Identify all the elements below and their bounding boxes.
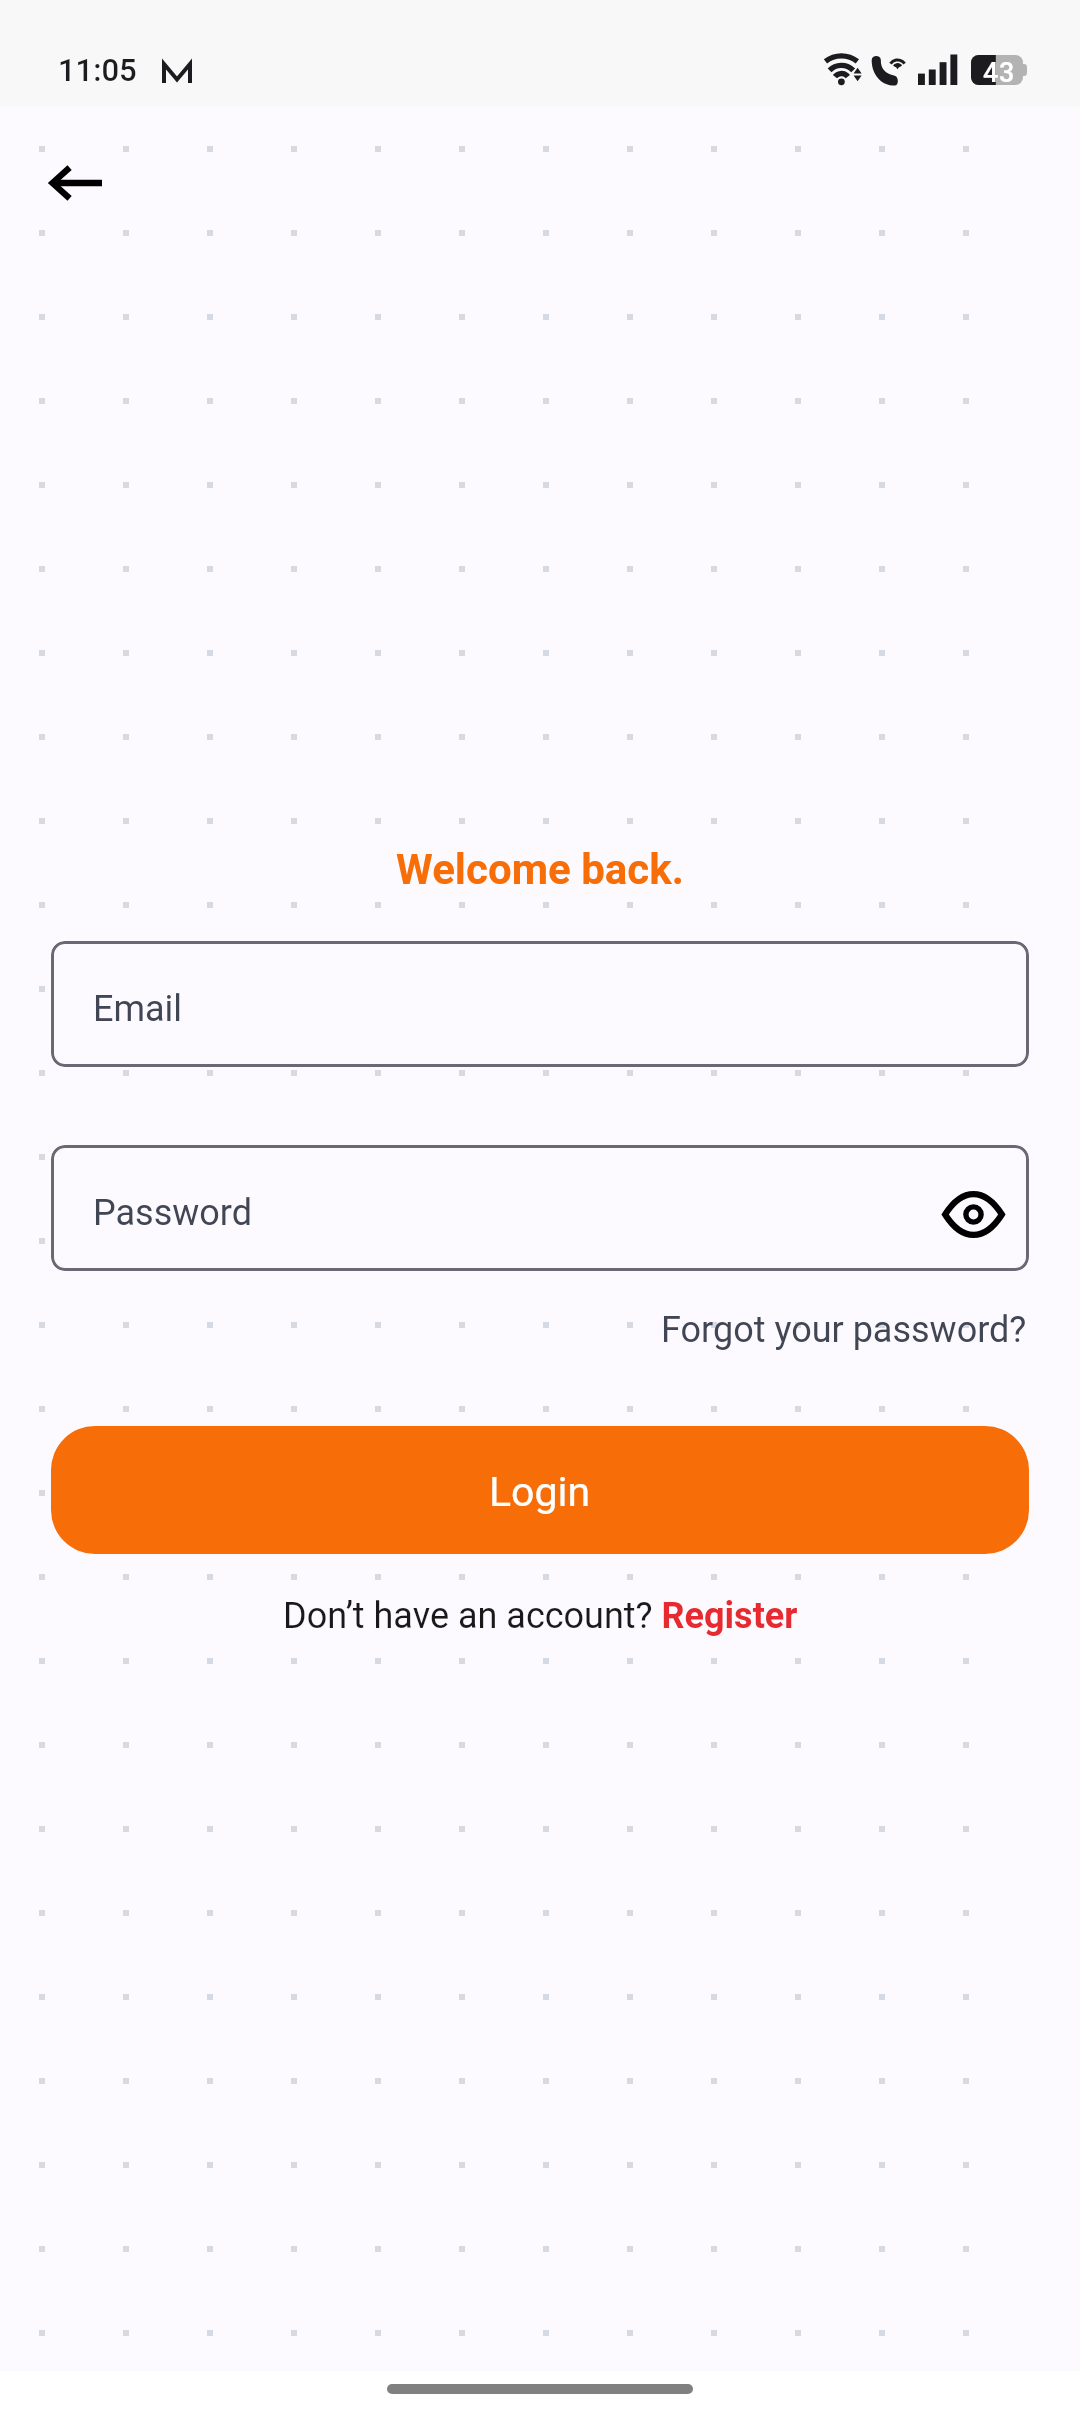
button[interactable]: Forgot your password? (661, 1302, 1027, 1358)
staticText: Email (93, 988, 183, 1030)
staticText: Login (489, 1468, 591, 1516)
staticText: 11:05 (58, 52, 137, 88)
button[interactable]: Back (21, 129, 129, 237)
button[interactable]: Show password (931, 1172, 1015, 1256)
staticText: Forgot your password? (661, 1309, 1027, 1351)
button[interactable]: Email (51, 941, 1029, 1067)
button[interactable]: Login (51, 1426, 1029, 1554)
staticText: 43 (983, 57, 1015, 87)
staticText: Password (93, 1192, 253, 1234)
button[interactable]: Don’t have an account? Register (279, 1591, 802, 1641)
staticText: Welcome back. (0, 845, 1080, 894)
staticText: Don’t have an account? Register (283, 1595, 798, 1637)
button[interactable]: Password (51, 1145, 1029, 1271)
